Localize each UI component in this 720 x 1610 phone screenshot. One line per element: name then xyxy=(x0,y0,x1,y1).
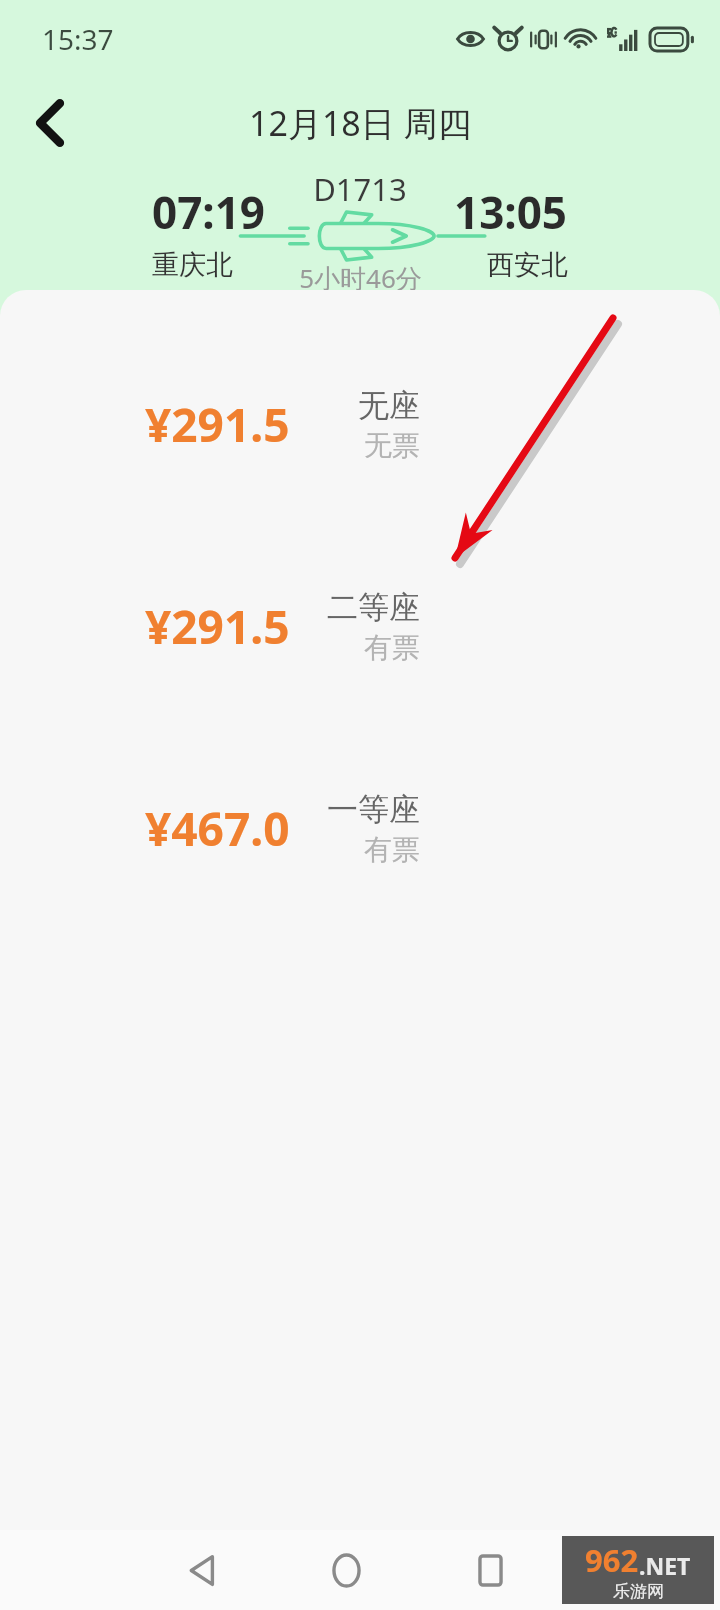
staticText: 乐游网 xyxy=(613,1581,664,1602)
button[interactable]: ¥291.5 xyxy=(0,584,720,668)
staticText: 西安北 xyxy=(487,248,568,282)
button[interactable]: ¥291.5 xyxy=(0,382,720,466)
staticText: 13:05 xyxy=(454,182,568,242)
staticText: 5小时46分 xyxy=(299,260,422,290)
staticText: 有票 xyxy=(364,630,420,665)
staticText: 07:19 xyxy=(152,182,266,242)
staticText: .NET xyxy=(639,1550,691,1581)
staticText: 15:37 xyxy=(42,20,114,58)
button[interactable]: Recent apps xyxy=(446,1530,534,1610)
staticText: 一等座 xyxy=(327,790,420,829)
staticText: 无票 xyxy=(364,428,420,463)
staticText: 二等座 xyxy=(327,588,420,627)
staticText: 重庆北 xyxy=(152,248,233,282)
button[interactable]: Back xyxy=(158,1530,246,1610)
staticText: 无座 xyxy=(358,386,420,425)
button[interactable]: Home xyxy=(302,1530,390,1610)
staticText: 962 xyxy=(585,1539,639,1581)
button[interactable]: ¥467.0 xyxy=(0,786,720,870)
staticText: 有票 xyxy=(364,832,420,867)
staticText: ¥291.5 xyxy=(145,393,290,456)
staticText: D1713 xyxy=(313,168,407,210)
staticText: 12月18日 周四 xyxy=(249,100,472,146)
staticText: ¥291.5 xyxy=(145,595,290,658)
staticText: ¥467.0 xyxy=(145,797,290,860)
button[interactable]: Back xyxy=(16,89,84,157)
